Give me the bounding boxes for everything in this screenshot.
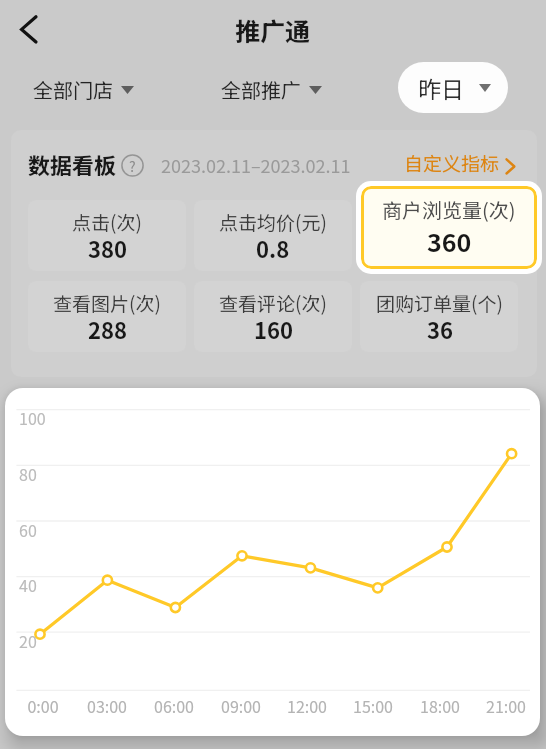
- staticText: 推广通: [235, 12, 311, 48]
- staticText: 160: [254, 313, 293, 345]
- button[interactable]: 商户浏览量(次): [356, 181, 542, 274]
- staticText: 380: [88, 232, 127, 264]
- staticText: 自定义指标: [404, 149, 500, 177]
- staticText: 18:00: [405, 694, 475, 717]
- button[interactable]: 点击均价(元): [194, 200, 352, 271]
- button[interactable]: Back: [0, 0, 58, 58]
- button[interactable]: 团购订单量(个): [360, 281, 518, 352]
- staticText: 点击(次): [72, 208, 142, 236]
- button[interactable]: 昨日: [398, 62, 508, 113]
- button[interactable]: 全部门店: [33, 75, 134, 104]
- button[interactable]: Help: [121, 154, 144, 177]
- button[interactable]: 全部推广: [221, 75, 322, 104]
- staticText: 80: [19, 462, 37, 485]
- button[interactable]: 查看图片(次): [28, 281, 186, 352]
- staticText: 21:00: [471, 694, 540, 717]
- staticText: 36: [427, 313, 453, 345]
- staticText: 288: [88, 313, 127, 345]
- staticText: 09:00: [206, 694, 276, 717]
- staticText: 03:00: [72, 694, 142, 717]
- button[interactable]: 自定义指标: [398, 148, 526, 178]
- staticText: 12:00: [272, 694, 342, 717]
- staticText: 100: [19, 406, 46, 429]
- staticText: 商户浏览量(次): [382, 195, 516, 224]
- staticText: 360: [427, 223, 472, 259]
- staticText: 60: [19, 518, 37, 541]
- staticText: 40: [19, 573, 37, 596]
- button[interactable]: 点击(次): [28, 200, 186, 271]
- staticText: 全部门店: [33, 75, 113, 104]
- staticText: 点击均价(元): [219, 208, 327, 236]
- staticText: 20: [19, 629, 37, 652]
- staticText: 查看评论(次): [219, 289, 327, 317]
- staticText: 0.8: [256, 232, 290, 264]
- staticText: 15:00: [338, 694, 408, 717]
- staticText: 查看图片(次): [53, 289, 161, 317]
- staticText: 数据看板: [28, 148, 117, 180]
- staticText: 昨日: [418, 71, 464, 104]
- button[interactable]: 查看评论(次): [194, 281, 352, 352]
- staticText: 0:00: [8, 694, 78, 717]
- staticText: 06:00: [139, 694, 209, 717]
- staticText: 全部推广: [221, 75, 301, 104]
- staticText: ?: [129, 156, 136, 176]
- staticText: 团购订单量(个): [376, 289, 503, 317]
- staticText: 2023.02.11–2023.02.11: [161, 152, 351, 178]
